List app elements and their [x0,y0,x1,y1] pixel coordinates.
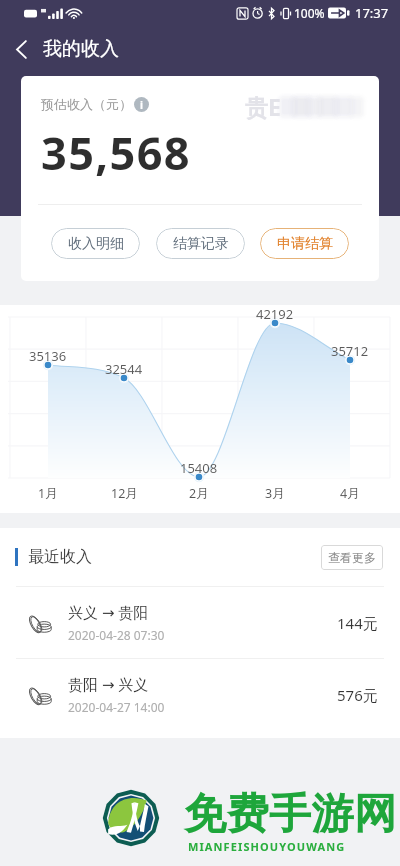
staticText: 预估收入（元） [41,96,132,112]
staticText: 兴义 → 贵阳 [68,602,149,622]
staticText: 32544 [105,360,143,378]
button[interactable]: Info [134,97,149,112]
staticText: 2月 [189,485,209,502]
staticText: 结算记录 [173,235,229,253]
staticText: 35712 [331,342,369,360]
staticText: 2020-04-27 14:00 [68,699,165,715]
staticText: MIANFEISHOUYOUWANG [188,839,346,854]
staticText: 35,568 [41,122,191,183]
staticText: 17:37 [355,4,389,22]
button[interactable]: Back [4,31,40,67]
button[interactable]: 兴义 → 贵阳 [0,587,400,658]
staticText: 35136 [29,347,67,365]
staticText: 100% [294,5,325,21]
staticText: 4月 [340,485,360,502]
button[interactable]: 查看更多 [321,545,383,570]
button[interactable]: 结算记录 [156,228,245,259]
staticText: 576元 [337,685,378,705]
staticText: 收入明细 [68,235,124,253]
staticText: 最近收入 [28,547,92,567]
staticText: i [140,98,143,112]
staticText: 1月 [38,485,58,502]
staticText: 免费手游网 [184,788,397,841]
staticText: 2020-04-28 07:30 [68,627,165,643]
staticText: 申请结算 [277,235,333,253]
staticText: 12月 [111,485,138,502]
staticText: 贵阳 → 兴义 [68,674,149,694]
button[interactable]: 申请结算 [260,228,349,259]
button[interactable]: 收入明细 [51,228,140,259]
staticText: 42192 [256,305,294,323]
staticText: 我的收入 [43,37,119,61]
staticText: 15408 [180,459,218,477]
button[interactable]: 贵阳 → 兴义 [0,659,400,730]
staticText: 3月 [265,485,285,502]
staticText: 查看更多 [328,550,376,565]
staticText: 144元 [337,613,378,633]
staticText: 贵E [245,91,281,122]
